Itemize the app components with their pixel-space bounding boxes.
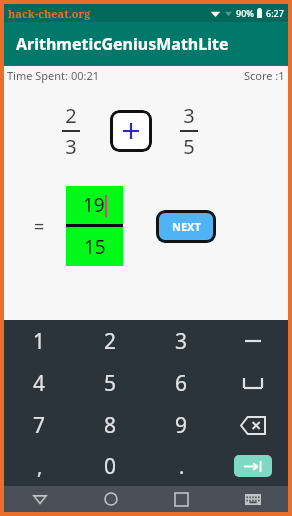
staticText: ArithmeticGeniusMathLite xyxy=(16,33,229,55)
button[interactable]: 19 xyxy=(66,186,123,266)
button[interactable]: Switch keyboard xyxy=(217,486,288,512)
button[interactable]: Minus xyxy=(217,320,288,362)
staticText: 1 xyxy=(33,327,46,356)
staticText: 5 xyxy=(104,369,117,398)
button[interactable]: Delete xyxy=(217,404,288,446)
button[interactable]: 1 xyxy=(4,320,75,362)
staticText: , xyxy=(37,453,43,480)
button[interactable]: , xyxy=(4,446,75,486)
button[interactable]: Space xyxy=(217,362,288,404)
button[interactable]: 2 xyxy=(75,320,146,362)
staticText: Score :1 xyxy=(244,68,285,83)
button[interactable]: Operation plus xyxy=(110,110,152,152)
staticText: 3 xyxy=(183,102,195,129)
button[interactable]: 4 xyxy=(4,362,75,404)
staticText: = xyxy=(34,214,45,239)
staticText: 4 xyxy=(33,369,46,398)
staticText: 0 xyxy=(104,452,117,481)
staticText: NEXT xyxy=(172,219,201,234)
staticText: 90% xyxy=(236,7,254,19)
button[interactable]: 3 xyxy=(146,320,217,362)
button[interactable]: Enter xyxy=(217,446,288,486)
button[interactable]: 5 xyxy=(75,362,146,404)
staticText: 5 xyxy=(183,133,195,160)
staticText: 8 xyxy=(104,411,117,440)
staticText: 3 xyxy=(175,327,188,356)
staticText: 3 xyxy=(65,133,77,160)
button[interactable]: 6 xyxy=(146,362,217,404)
staticText: 6 xyxy=(175,369,188,398)
staticText: 2 xyxy=(104,327,117,356)
staticText: 15 xyxy=(84,234,106,260)
button[interactable]: Back xyxy=(4,486,75,512)
staticText: hack-cheat.org xyxy=(8,6,91,21)
button[interactable]: 9 xyxy=(146,404,217,446)
button[interactable]: . xyxy=(146,446,217,486)
staticText: 6:27 xyxy=(266,7,284,19)
button[interactable]: 7 xyxy=(4,404,75,446)
button[interactable]: Recents xyxy=(146,486,217,512)
staticText: 2 xyxy=(65,102,77,129)
staticText: Time Spent: 00:21 xyxy=(7,68,100,83)
button[interactable]: 8 xyxy=(75,404,146,446)
staticText: 9 xyxy=(175,411,188,440)
staticText: . xyxy=(179,453,185,480)
staticText: 19 xyxy=(83,192,105,218)
button[interactable]: NEXT xyxy=(156,210,216,243)
button[interactable]: 0 xyxy=(75,446,146,486)
button[interactable]: Home xyxy=(75,486,146,512)
staticText: 7 xyxy=(33,411,46,440)
